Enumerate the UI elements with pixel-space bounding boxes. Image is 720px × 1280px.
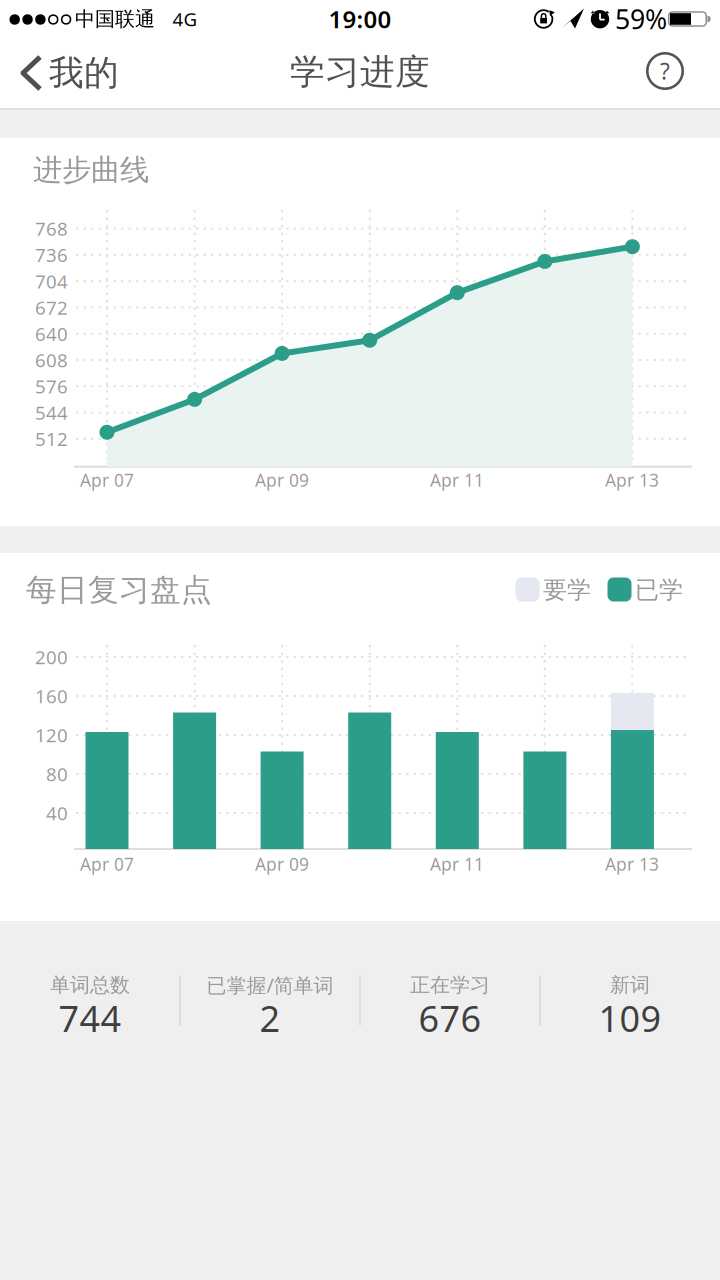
staticText: 676 (418, 994, 481, 1042)
staticText: 576 (35, 374, 68, 399)
staticText: Apr 09 (255, 852, 309, 875)
staticText: Apr 07 (80, 468, 134, 491)
staticText: 19:00 (328, 3, 391, 35)
staticText: 每日复习盘点 (26, 571, 212, 609)
staticText: 正在学习 (410, 973, 490, 997)
staticText: 4G (172, 7, 197, 31)
staticText: 40 (46, 801, 68, 825)
staticText: 已学 (635, 575, 683, 605)
staticText: 新词 (610, 973, 650, 997)
button[interactable]: 我的 (0, 40, 130, 108)
staticText: 进步曲线 (33, 152, 149, 188)
staticText: 单词总数 (50, 973, 130, 997)
staticText: 中国联通 (75, 7, 155, 31)
staticText: Apr 11 (430, 468, 484, 491)
staticText: 672 (35, 295, 68, 320)
staticText: 2 (259, 994, 280, 1042)
staticText: 80 (46, 762, 68, 786)
staticText: 744 (58, 994, 121, 1042)
staticText: 544 (35, 400, 68, 425)
staticText: 768 (35, 216, 68, 241)
staticText: 59% (615, 1, 667, 37)
staticText: 640 (35, 321, 68, 346)
staticText: 120 (35, 723, 68, 747)
staticText: Apr 13 (605, 852, 659, 875)
staticText: 已掌握/简单词 (206, 972, 333, 998)
staticText: 我的 (49, 52, 119, 94)
staticText: 704 (35, 269, 68, 294)
staticText: ? (660, 56, 670, 86)
button[interactable]: Help (643, 49, 687, 93)
staticText: 要学 (543, 575, 591, 605)
staticText: Apr 11 (430, 852, 484, 875)
staticText: 学习进度 (290, 51, 430, 93)
staticText: 736 (35, 242, 68, 267)
staticText: Apr 07 (80, 852, 134, 875)
staticText: Apr 13 (605, 468, 659, 491)
staticText: 109 (598, 994, 661, 1042)
staticText: Apr 09 (255, 468, 309, 491)
staticText: 160 (35, 684, 68, 708)
staticText: 200 (35, 645, 68, 669)
staticText: 512 (35, 426, 68, 451)
staticText: 608 (35, 348, 68, 372)
